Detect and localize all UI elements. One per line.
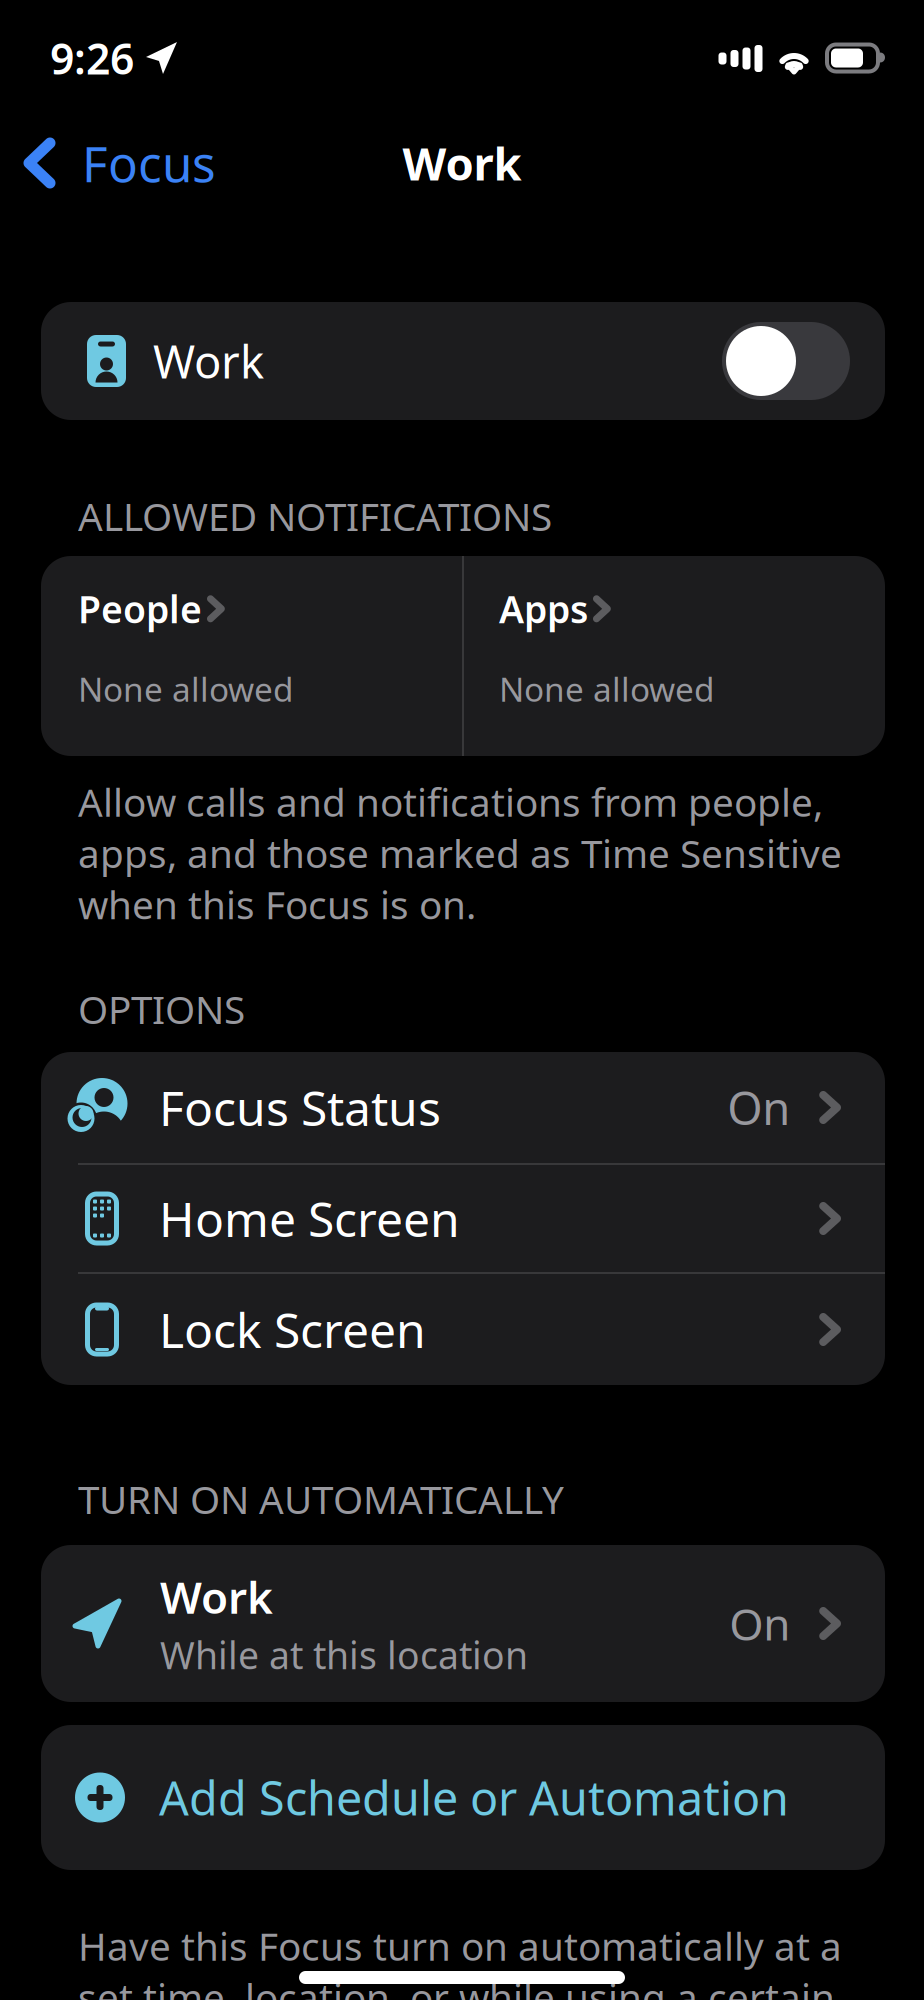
staticText: 9:26 [50, 30, 134, 86]
button[interactable]: Focus [0, 118, 216, 208]
staticText: On [729, 1594, 790, 1653]
button[interactable]: People [41, 556, 462, 756]
button[interactable]: Focus Status [41, 1052, 885, 1163]
button[interactable]: Work [41, 1545, 885, 1702]
staticText: Focus Status [159, 1076, 441, 1139]
button[interactable]: Work [41, 302, 885, 420]
staticText: Focus [82, 130, 216, 196]
staticText: Add Schedule or Automation [159, 1766, 789, 1828]
staticText: Apps [499, 584, 588, 634]
staticText: None allowed [78, 667, 294, 711]
staticText: People [78, 584, 202, 634]
staticText: TURN ON AUTOMATICALLY [78, 1473, 564, 1525]
staticText: Home Screen [159, 1187, 460, 1250]
staticText: Work [153, 331, 264, 391]
staticText: Work [402, 133, 521, 193]
button[interactable]: Lock Screen [41, 1274, 885, 1385]
staticText: Work [160, 1567, 273, 1626]
button[interactable]: Add Schedule or Automation [41, 1725, 885, 1870]
staticText: Have this Focus turn on automatically at… [78, 1920, 842, 2000]
button[interactable]: Home Screen [41, 1165, 885, 1272]
staticText: Allow calls and notifications from peopl… [78, 776, 842, 930]
staticText: OPTIONS [78, 983, 245, 1035]
staticText: While at this location [160, 1630, 528, 1679]
staticText: On [727, 1077, 790, 1138]
staticText: Lock Screen [159, 1298, 426, 1361]
staticText: None allowed [499, 667, 715, 711]
staticText: ALLOWED NOTIFICATIONS [78, 490, 552, 542]
button[interactable]: Apps [464, 556, 885, 756]
